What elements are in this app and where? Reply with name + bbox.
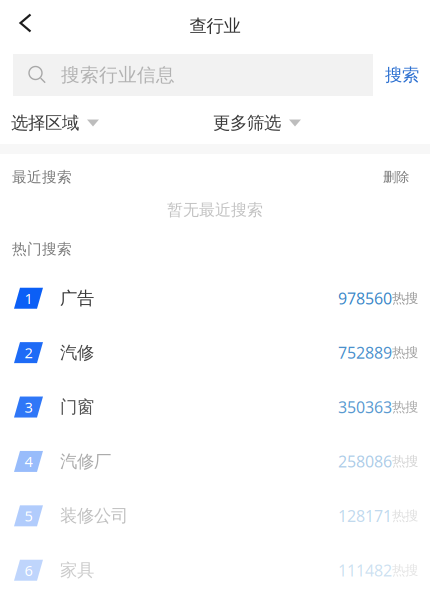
staticText: 汽修 — [60, 342, 94, 363]
staticText: 128171 — [338, 505, 392, 526]
button[interactable]: Back — [0, 0, 46, 46]
staticText: 111482 — [338, 560, 392, 581]
staticText: 查行业 — [189, 15, 240, 37]
staticText: 更多筛选 — [213, 112, 281, 134]
staticText: 6 — [24, 560, 32, 580]
button[interactable]: 选择区域 — [0, 102, 110, 144]
staticText: 装修公司 — [60, 505, 128, 526]
button[interactable]: 6 — [0, 543, 430, 597]
button[interactable]: 更多筛选 — [202, 102, 312, 144]
button[interactable]: 5 — [0, 489, 430, 543]
staticText: 家具 — [60, 560, 94, 581]
button[interactable]: 4 — [0, 434, 430, 489]
staticText: 热搜 — [392, 453, 418, 470]
staticText: 3 — [24, 397, 32, 417]
button[interactable]: 1 — [0, 271, 430, 325]
staticText: 258086 — [338, 451, 392, 472]
staticText: 350363 — [338, 396, 392, 418]
staticText: 978560 — [338, 288, 392, 309]
staticText: 热门搜索 — [12, 240, 72, 258]
staticText: 搜索行业信息 — [61, 63, 175, 86]
staticText: 搜索 — [385, 64, 419, 86]
button[interactable]: 删除 — [363, 154, 430, 200]
staticText: 最近搜索 — [12, 168, 72, 186]
staticText: 门窗 — [60, 396, 94, 418]
button[interactable]: 3 — [0, 380, 430, 434]
staticText: 选择区域 — [11, 112, 79, 134]
staticText: 汽修厂 — [60, 451, 111, 472]
staticText: 删除 — [383, 169, 409, 185]
staticText: 暂无最近搜索 — [167, 200, 263, 220]
staticText: 热搜 — [392, 344, 418, 361]
staticText: 5 — [24, 506, 32, 526]
button[interactable]: 2 — [0, 325, 430, 380]
staticText: 752889 — [338, 342, 392, 363]
staticText: 热搜 — [392, 399, 418, 415]
staticText: 热搜 — [392, 508, 418, 524]
staticText: 4 — [24, 452, 32, 471]
button[interactable]: 搜索 — [373, 51, 430, 99]
staticText: 广告 — [60, 288, 94, 309]
staticText: 热搜 — [392, 562, 418, 578]
staticText: 热搜 — [392, 290, 418, 306]
staticText: 1 — [24, 288, 32, 308]
staticText: 2 — [24, 343, 32, 362]
